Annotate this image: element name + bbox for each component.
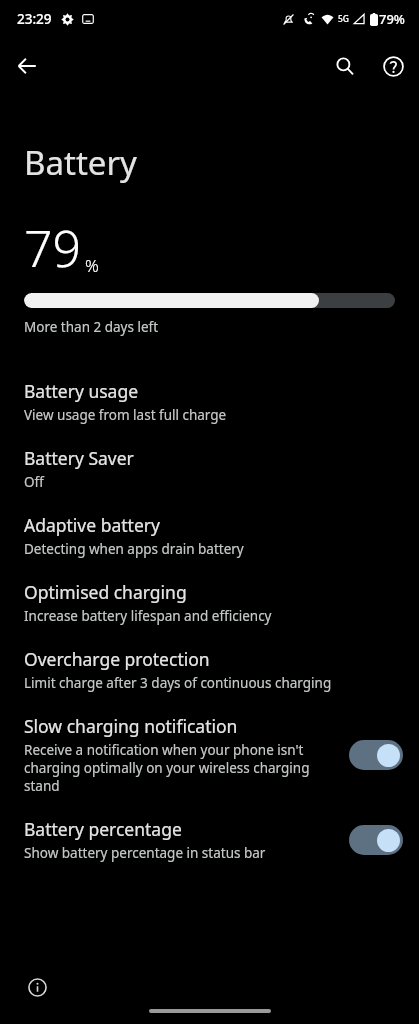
staticText: 23:29	[17, 10, 52, 28]
button[interactable]: Back	[7, 46, 47, 86]
button[interactable]: Battery usage	[0, 368, 419, 435]
button[interactable]: Slow charging notification	[0, 703, 419, 806]
staticText: Increase battery lifespan and efficiency	[24, 607, 272, 625]
button[interactable]: Battery percentage	[0, 806, 419, 873]
staticText: Show battery percentage in status bar	[24, 844, 266, 862]
button[interactable]: Help	[373, 46, 413, 86]
staticText: Limit charge after 3 days of continuous …	[24, 674, 332, 692]
button[interactable]: Search	[325, 46, 365, 86]
staticText: Overcharge protection	[24, 647, 210, 671]
staticText: Receive a notification when your phone i…	[24, 741, 337, 795]
staticText: View usage from last full charge	[24, 406, 227, 424]
staticText: %	[85, 254, 99, 277]
staticText: Battery percentage	[24, 817, 182, 841]
staticText: Battery Saver	[24, 446, 134, 470]
staticText: Adaptive battery	[24, 513, 160, 537]
button[interactable]: Overcharge protection	[0, 636, 419, 703]
button[interactable]: More information	[22, 972, 52, 1002]
staticText: Battery	[24, 140, 137, 185]
button[interactable]: Toggle on	[349, 825, 403, 855]
staticText: Optimised charging	[24, 580, 187, 604]
staticText: 79	[24, 214, 82, 282]
staticText: 5G	[338, 13, 350, 25]
button[interactable]: Toggle on	[349, 740, 403, 770]
staticText: Off	[24, 473, 44, 491]
staticText: Detecting when apps drain battery	[24, 540, 244, 558]
staticText: 79%	[379, 10, 405, 28]
staticText: Slow charging notification	[24, 714, 238, 738]
staticText: Battery usage	[24, 379, 139, 403]
staticText: More than 2 days left	[24, 318, 159, 336]
button[interactable]: Adaptive battery	[0, 502, 419, 569]
button[interactable]: Battery Saver	[0, 435, 419, 502]
button[interactable]: Optimised charging	[0, 569, 419, 636]
